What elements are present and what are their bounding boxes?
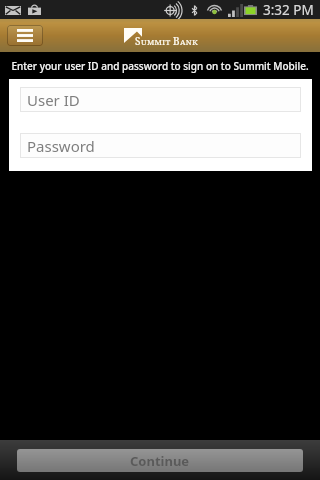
staticText: Password [27, 136, 95, 156]
staticText: 3:32 PM [263, 1, 314, 19]
staticText: ANK [180, 37, 198, 48]
staticText: B [173, 34, 180, 48]
staticText: User ID [27, 90, 80, 110]
button[interactable]: Menu [7, 25, 43, 46]
button[interactable]: Continue [17, 449, 303, 472]
staticText: UMMIT [141, 37, 171, 48]
staticText: Enter your user ID and password to sign … [11, 59, 309, 73]
button[interactable]: Password [20, 133, 301, 158]
staticText: S [135, 34, 141, 48]
staticText: Continue [130, 452, 190, 470]
button[interactable]: User ID [20, 87, 301, 112]
